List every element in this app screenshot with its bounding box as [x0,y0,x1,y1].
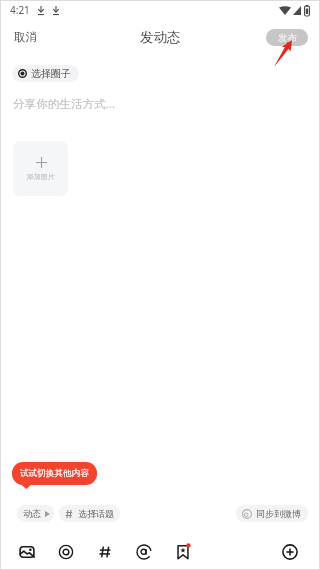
staticText: 分享你的生活方式... [13,96,116,112]
button[interactable]: 同步到微博 [236,505,308,522]
button[interactable]: Add photo [19,544,35,560]
staticText: 选择话题 [78,508,114,519]
staticText: 添加图片 [27,172,55,181]
button[interactable]: 取消 [1,24,47,50]
button[interactable]: 试试切换其他内容 [12,462,97,485]
staticText: 发布 [278,32,297,44]
button[interactable]: Location [58,544,74,560]
button[interactable]: 发布 [266,29,308,46]
staticText: 试试切换其他内容 [20,468,89,479]
button[interactable]: Mention [136,544,152,560]
staticText: 动态 [23,508,41,519]
staticText: 同步到微博 [256,508,301,519]
button[interactable]: Topic [97,544,113,560]
button[interactable]: Collection [175,544,191,560]
staticText: 发动态 [140,29,181,46]
staticText: 4:21 [10,3,30,17]
staticText: 选择圈子 [31,67,71,80]
button[interactable]: 选择话题 [59,505,120,522]
staticText: 取消 [14,30,37,44]
button[interactable]: 添加图片 [13,141,68,196]
button[interactable]: More [282,544,298,560]
button[interactable]: 选择圈子 [12,65,79,82]
button[interactable]: 动态 [17,505,54,522]
